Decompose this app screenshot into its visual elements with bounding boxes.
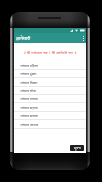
staticText: अध्याय पाचवा — [20, 96, 38, 101]
button[interactable]: अध्याय सहावा — [14, 103, 86, 112]
staticText: अध्याय तिसरा — [20, 80, 38, 85]
staticText: अध्याय चौथा — [20, 88, 37, 93]
staticText: अध्याय आठवा — [20, 122, 39, 127]
staticText: अध्याय सहावा — [20, 105, 38, 110]
button[interactable]: अध्याय पहिला — [14, 61, 86, 70]
button[interactable]: अध्याय आठवा — [14, 120, 86, 129]
button[interactable]: अध्याय पाचवा — [14, 94, 86, 103]
staticText: सूचना — [74, 146, 81, 150]
button[interactable]: अध्याय तिसरा — [14, 78, 86, 87]
staticText: अध्याय दुसरा — [20, 71, 37, 76]
button[interactable]: More options — [83, 36, 84, 41]
staticText: ज्ञानेश्वरी — [16, 35, 31, 41]
button[interactable]: सूचना — [70, 145, 84, 151]
staticText: ॥ श्री गणेशाय नमः । श्री सरस्वत्यै नमः ॥ — [14, 50, 86, 55]
button[interactable]: अध्याय सातवा — [14, 111, 86, 120]
button[interactable]: अध्याय दुसरा — [14, 69, 86, 78]
button[interactable]: अध्याय चौथा — [14, 86, 86, 95]
staticText: अध्याय सातवा — [20, 113, 38, 118]
staticText: अध्याय पहिला — [20, 63, 38, 68]
